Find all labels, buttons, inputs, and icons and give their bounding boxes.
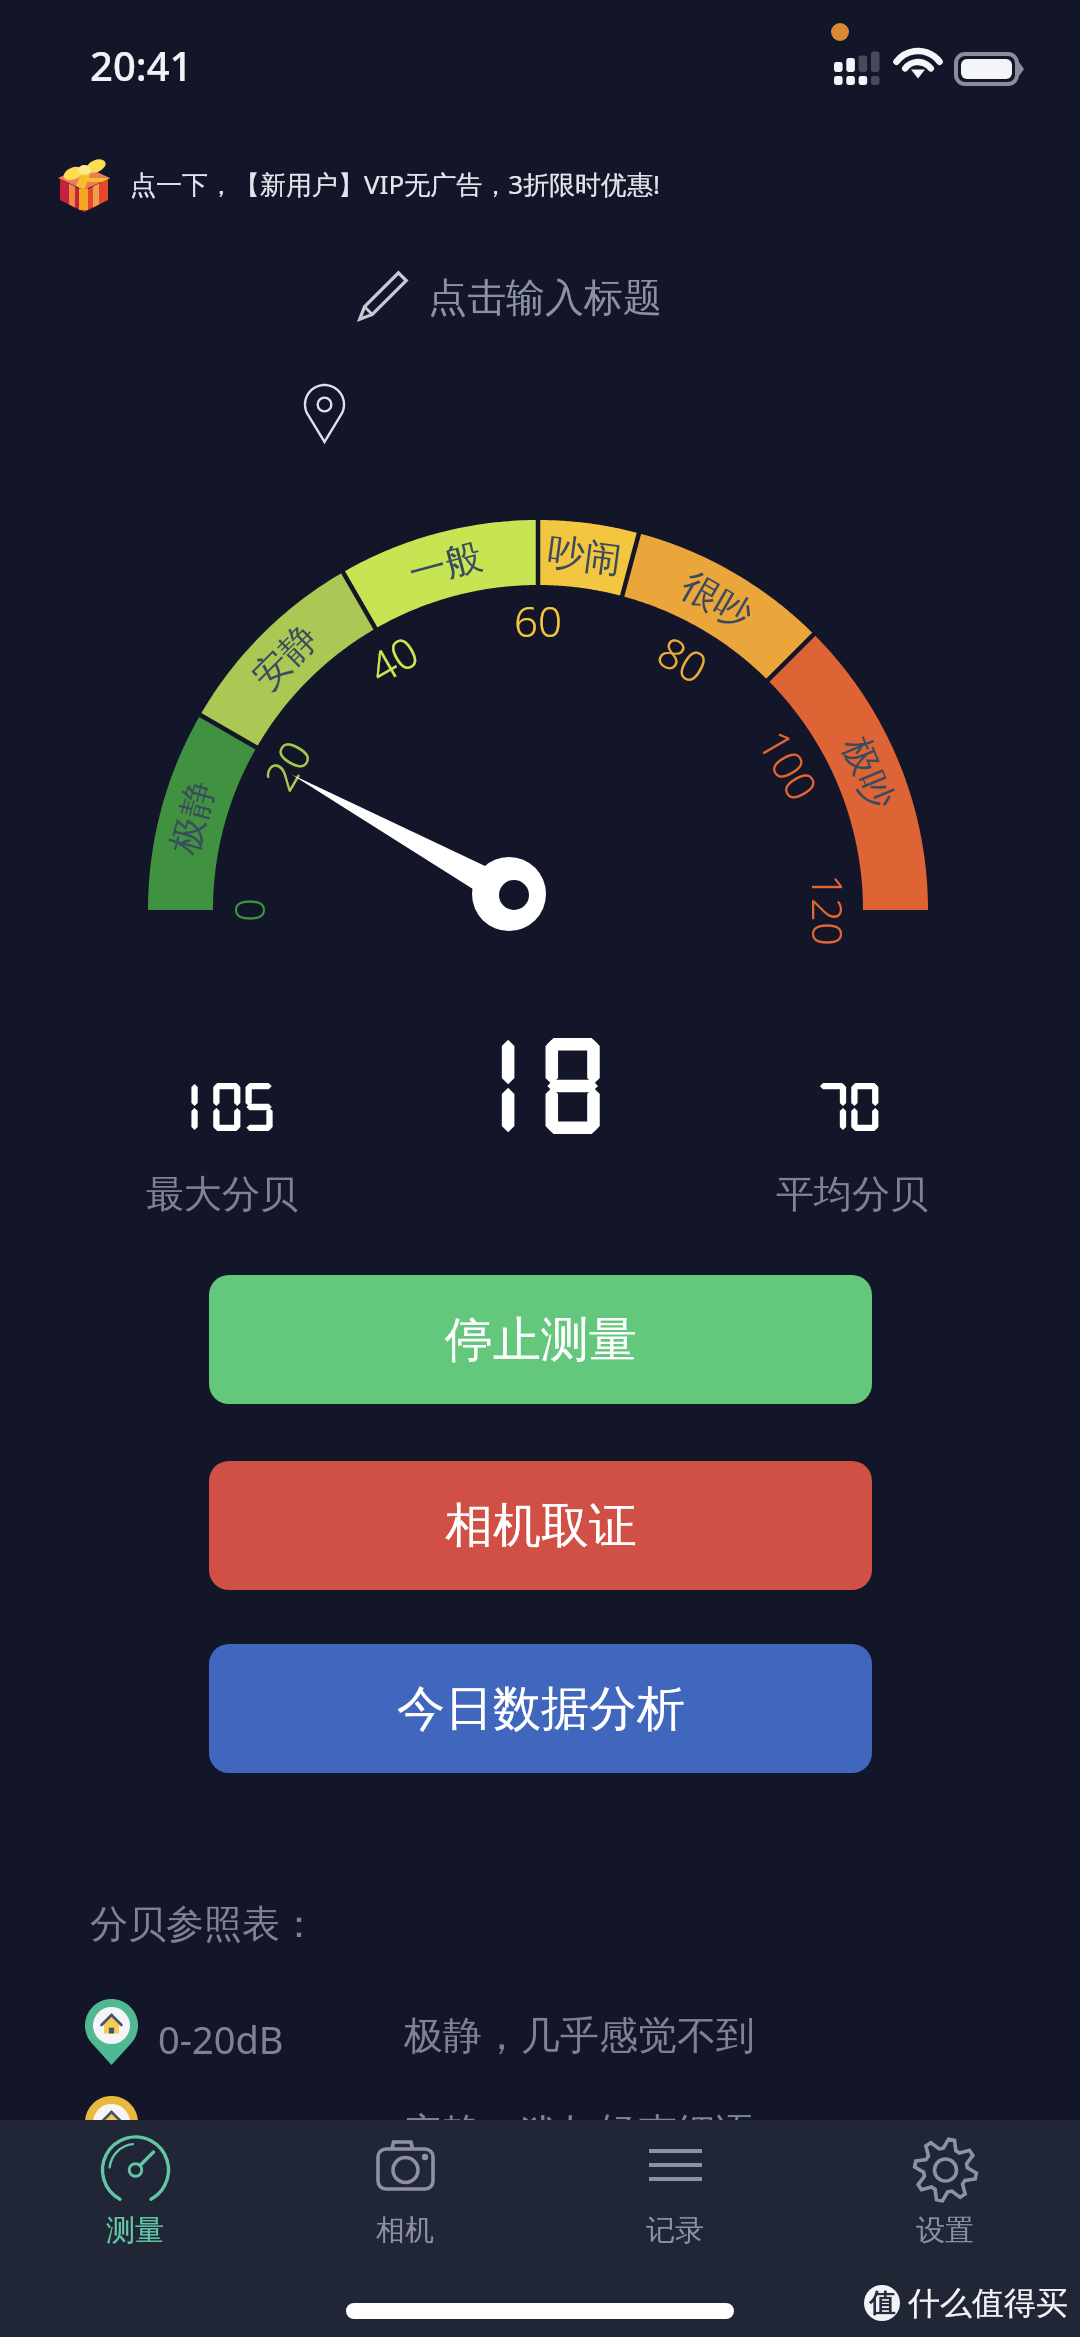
button[interactable]: 测量 [0, 2120, 270, 2249]
button[interactable]: 停止测量 [209, 1275, 872, 1404]
staticText: 今日数据分析 [397, 1679, 685, 1739]
button[interactable]: 设置 [810, 2120, 1080, 2249]
staticText: 点击输入标题 [428, 273, 662, 322]
staticText: 平均分贝 [776, 1170, 928, 1218]
staticText: 设置 [916, 2212, 974, 2249]
button[interactable]: 相机取证 [209, 1461, 872, 1590]
button[interactable]: 记录 [540, 2120, 810, 2249]
button[interactable]: 点一下，【新用户】VIP无广告，3折限时优惠! [0, 140, 1080, 228]
button[interactable]: Location [305, 385, 344, 442]
staticText: 20:41 [90, 38, 193, 92]
staticText: 相机 [376, 2212, 434, 2249]
staticText: 安静，犹如轻声细语 [404, 2108, 755, 2157]
button[interactable]: 相机 [270, 2120, 540, 2249]
staticText: 20-40dB [158, 2110, 306, 2162]
button[interactable]: 今日数据分析 [209, 1644, 872, 1773]
staticText: 什么值得买 [908, 2283, 1068, 2323]
staticText: 测量 [106, 2212, 164, 2249]
button[interactable]: 点击输入标题 [352, 253, 662, 341]
staticText: 停止测量 [445, 1310, 637, 1370]
staticText: 相机取证 [445, 1496, 637, 1556]
staticText: 值 [869, 2287, 895, 2320]
staticText: 极静，几乎感觉不到 [404, 2011, 755, 2060]
staticText: 记录 [646, 2212, 704, 2249]
staticText: 0-20dB [158, 2013, 284, 2065]
staticText: 点一下，【新用户】VIP无广告，3折限时优惠! [130, 166, 661, 202]
staticText: 分贝参照表： [90, 1900, 318, 1948]
staticText: 最大分贝 [146, 1170, 298, 1218]
